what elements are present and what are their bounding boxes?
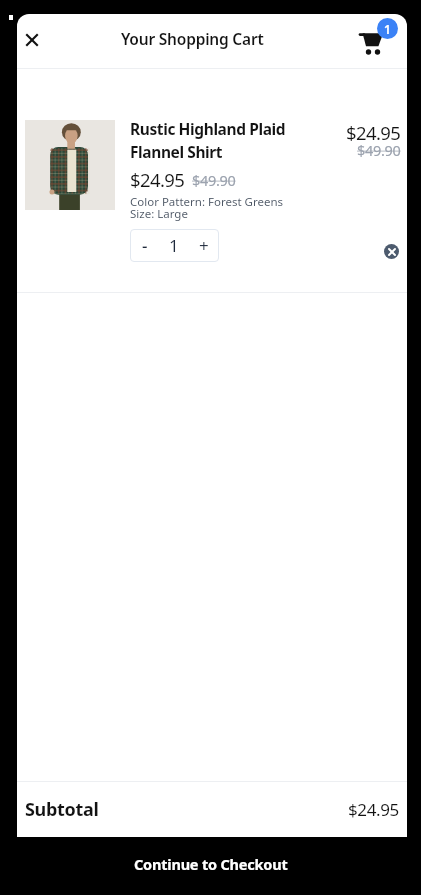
staticText: Color Pattern: Forest Greens Size: Large — [130, 194, 284, 221]
staticText: Subtotal — [25, 797, 99, 822]
staticText: $49.90 — [192, 170, 236, 190]
button[interactable]: - — [130, 229, 159, 262]
staticText: $24.95 — [130, 167, 185, 192]
button[interactable] — [384, 244, 399, 259]
staticText: $49.90 — [357, 140, 401, 160]
staticText: 1 — [169, 234, 179, 257]
staticText: $24.95 — [346, 120, 401, 145]
staticText: Rustic Highland Plaid Flannel Shirt — [130, 118, 286, 163]
button[interactable]: Rustic Highland Plaid Flannel Shirt — [17, 114, 407, 292]
staticText: Continue to Checkout — [134, 854, 288, 874]
button[interactable]: Continue to Checkout — [0, 837, 421, 895]
staticText: Your Shopping Cart — [121, 28, 264, 49]
staticText: $24.95 — [348, 798, 399, 821]
button[interactable]: + — [189, 229, 219, 262]
button[interactable] — [17, 25, 46, 54]
button[interactable] — [357, 28, 389, 60]
staticText: + — [199, 234, 209, 257]
staticText: - — [142, 234, 148, 257]
staticText: 1 — [384, 21, 391, 37]
